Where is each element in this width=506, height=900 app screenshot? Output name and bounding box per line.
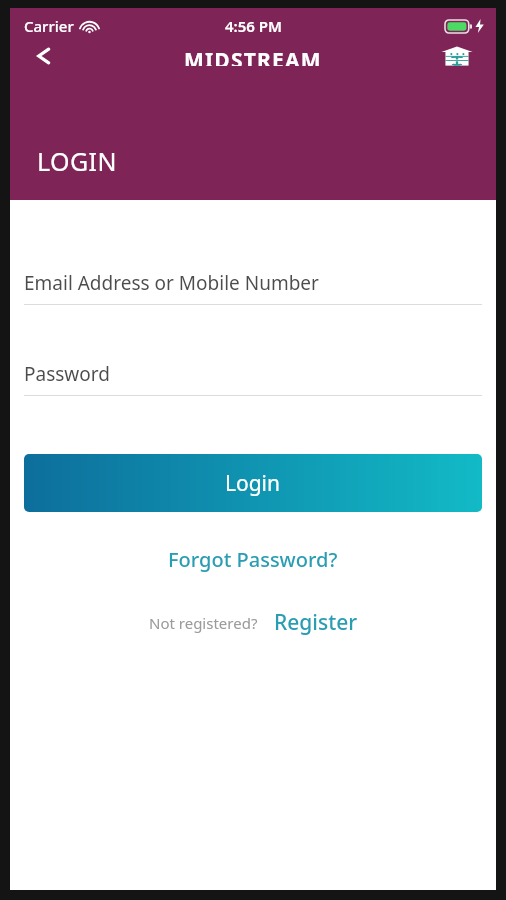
button[interactable]: Back — [20, 46, 68, 66]
button[interactable]: Forgot Password? — [10, 541, 496, 578]
staticText: Login — [225, 469, 281, 498]
button[interactable]: Password — [24, 359, 482, 396]
button[interactable]: Login — [24, 454, 482, 512]
button[interactable]: Register — [274, 608, 358, 637]
staticText: Email Address or Mobile Number — [24, 270, 319, 296]
staticText: Forgot Password? — [168, 546, 338, 573]
staticText: MIDSTREAM — [184, 46, 322, 66]
staticText: 4:56 PM — [225, 16, 282, 36]
staticText: Carrier — [24, 16, 74, 36]
staticText: Password — [24, 361, 110, 387]
staticText: LOGIN — [37, 144, 117, 178]
staticText: Not registered? — [149, 613, 258, 633]
button[interactable]: Email Address or Mobile Number — [24, 268, 482, 305]
staticText: Register — [274, 608, 358, 637]
button[interactable]: Midstream logo — [434, 46, 480, 66]
